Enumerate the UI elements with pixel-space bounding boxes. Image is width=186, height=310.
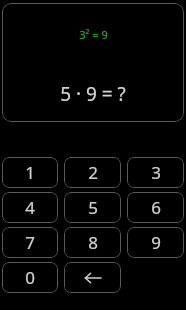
button[interactable]: 2: [64, 157, 121, 188]
button[interactable]: 4: [2, 192, 58, 223]
button[interactable]: 7: [2, 227, 58, 258]
button[interactable]: 6: [127, 192, 184, 223]
button[interactable]: 1: [2, 157, 58, 188]
staticText: 9: [151, 231, 161, 254]
staticText: 2: [88, 161, 98, 184]
button[interactable]: 3: [127, 157, 184, 188]
staticText: 3: [151, 161, 161, 184]
button[interactable]: 3² = 9: [2, 3, 184, 122]
button[interactable]: Backspace: [64, 262, 121, 293]
button[interactable]: 8: [64, 227, 121, 258]
staticText: 4: [25, 196, 35, 219]
button[interactable]: 9: [127, 227, 184, 258]
button[interactable]: 0: [2, 262, 58, 293]
staticText: 7: [25, 231, 35, 254]
staticText: 3² = 9: [79, 27, 108, 42]
staticText: 8: [88, 231, 98, 254]
staticText: 5 · 9 = ?: [60, 81, 126, 107]
staticText: 1: [25, 161, 35, 184]
button[interactable]: 5: [64, 192, 121, 223]
staticText: 0: [25, 266, 35, 289]
staticText: 5: [88, 196, 98, 219]
staticText: 6: [151, 196, 161, 219]
